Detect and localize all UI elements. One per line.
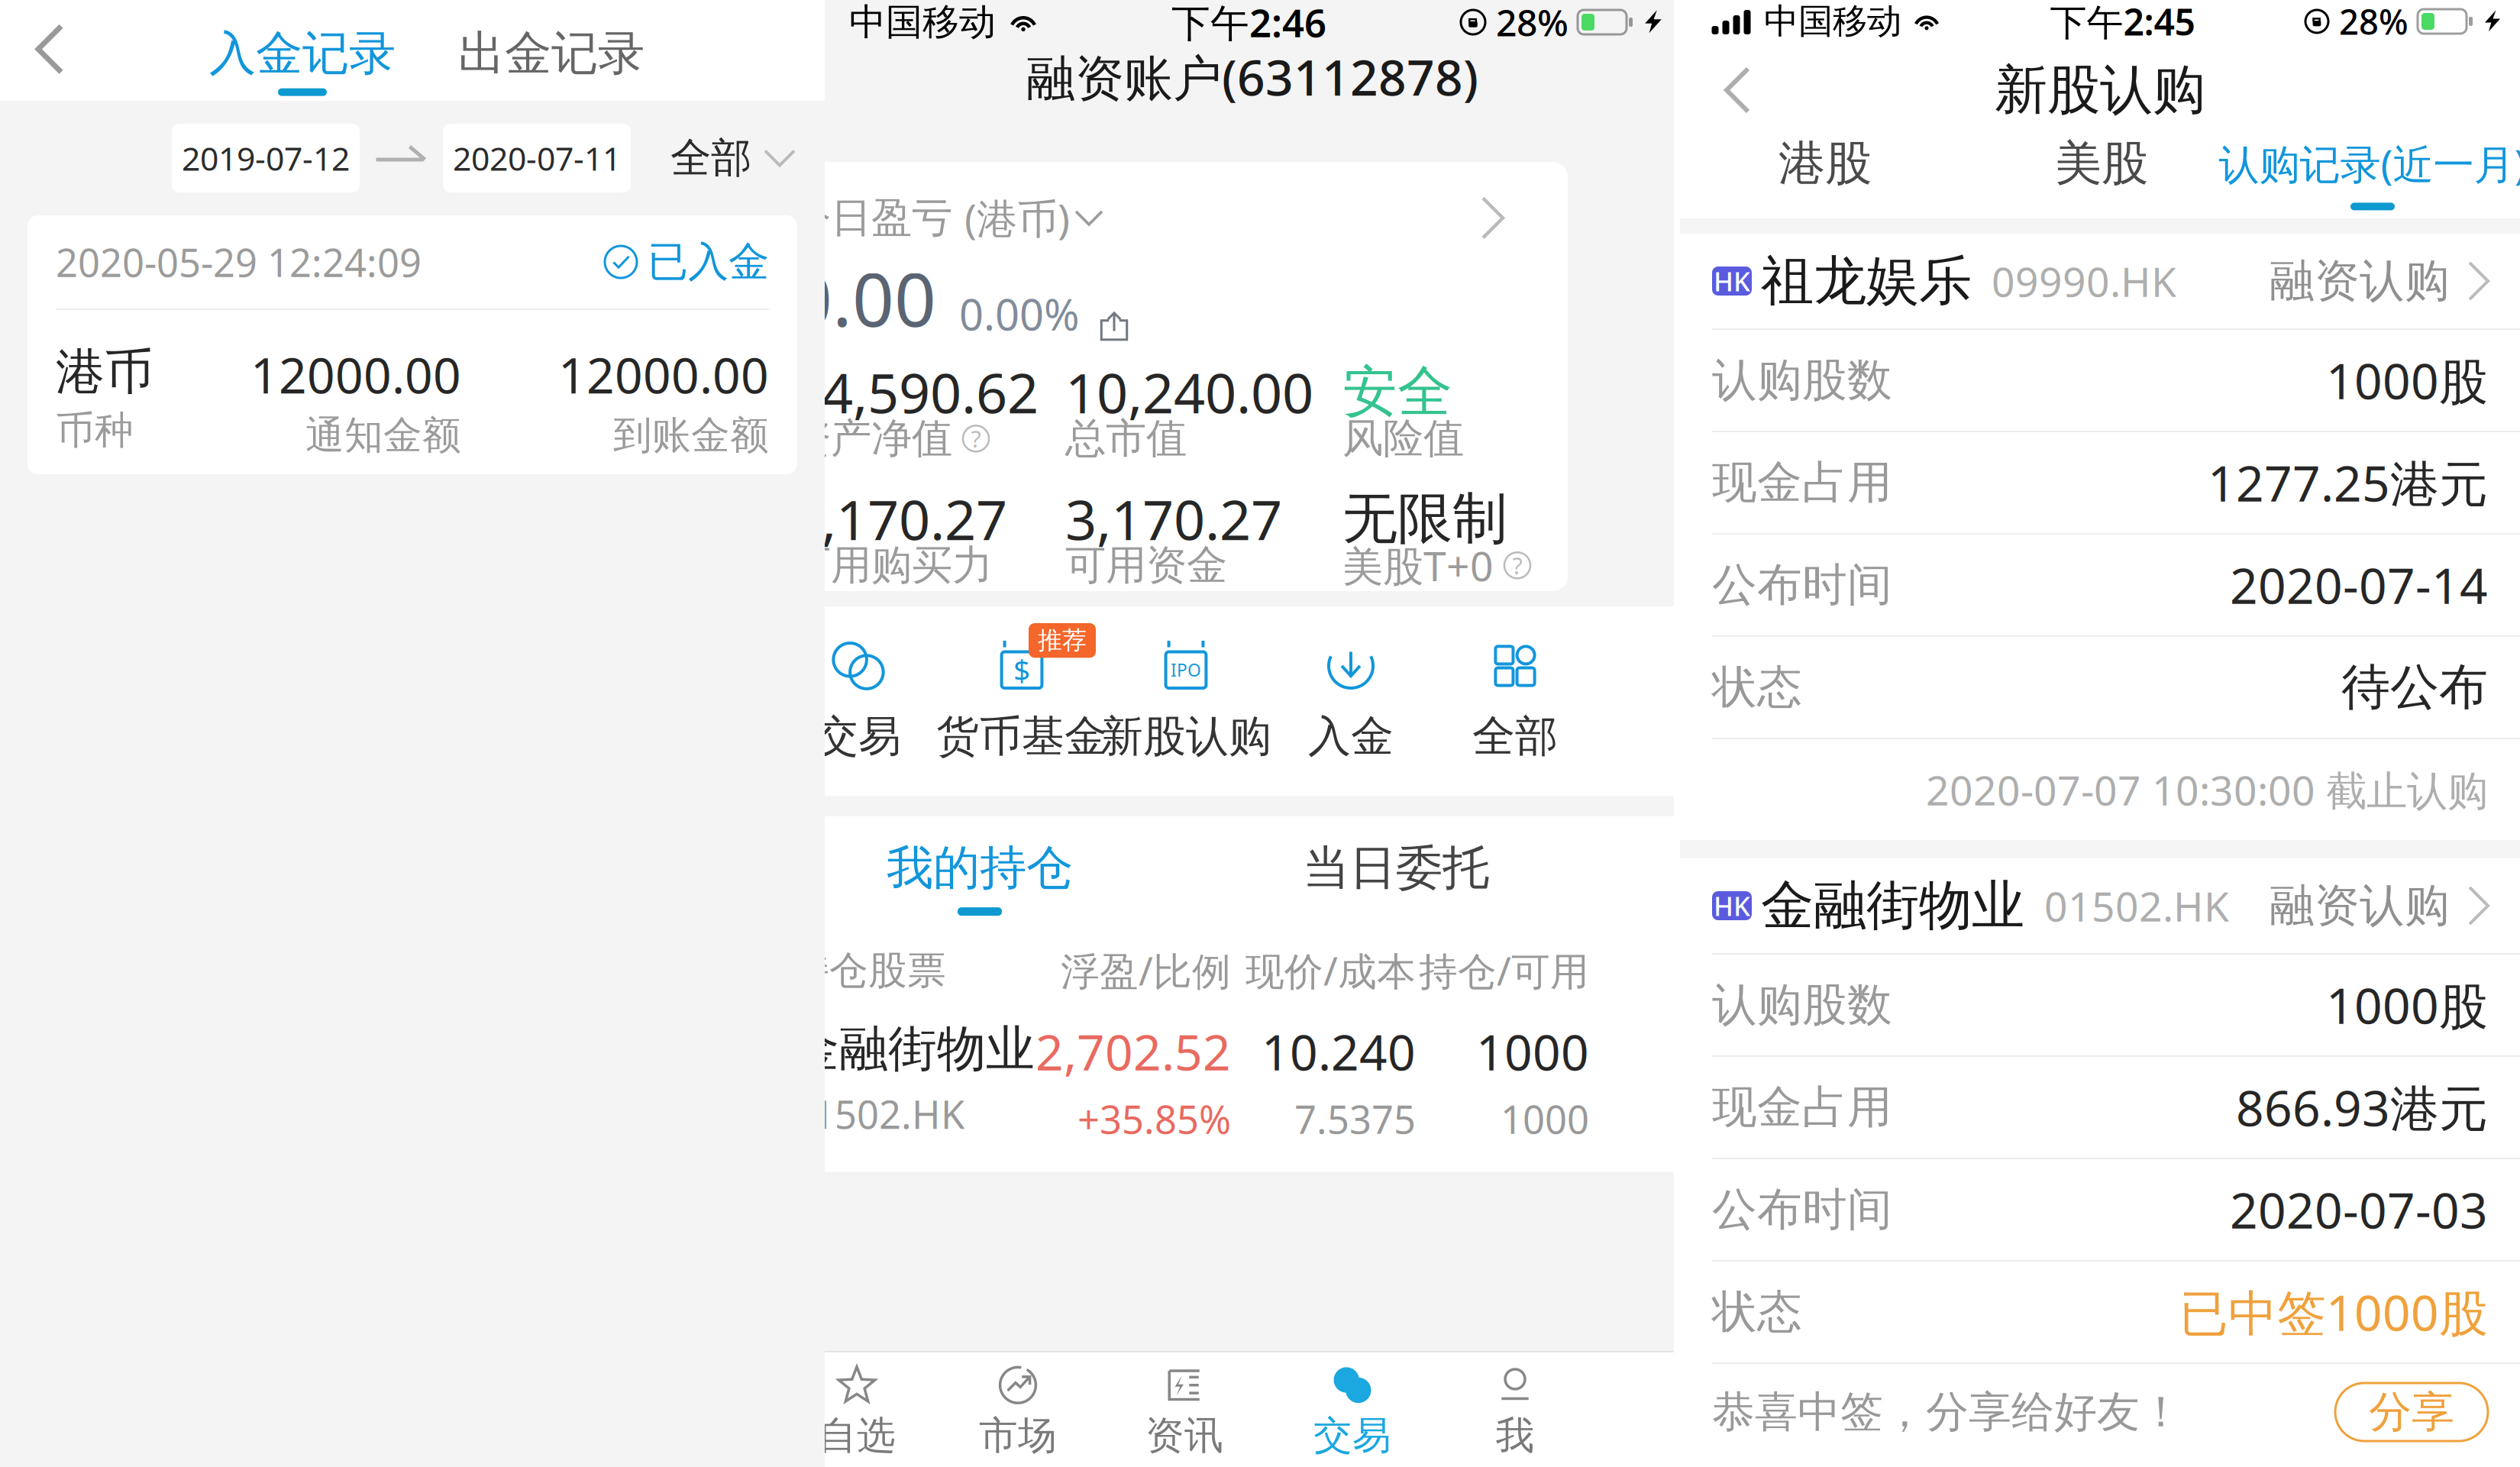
staticText: 01502.HK [2044, 879, 2229, 933]
button[interactable]: 市场 [923, 1363, 1113, 1459]
staticText: 无限制 [1342, 485, 1507, 553]
button[interactable]: 美股 [1987, 135, 2216, 221]
staticText: 已中签1000股 [2179, 1280, 2488, 1344]
staticText: 01502.HK [790, 1088, 964, 1140]
staticText: 公布时间 [1712, 557, 1892, 613]
button[interactable]: 认购记录(近一月) [2222, 136, 2520, 219]
button[interactable]: $ [926, 634, 1117, 763]
staticText: 0.00 [790, 250, 936, 347]
staticText: $ [1013, 650, 1030, 690]
button[interactable]: 交易 [1256, 1363, 1449, 1459]
staticText: 现价/成本 [1245, 945, 1416, 996]
button[interactable]: Back [0, 0, 99, 100]
staticText: 2019-07-12 [182, 136, 350, 180]
button[interactable]: 资讯 [1113, 1363, 1256, 1459]
staticText: 0.00% [959, 286, 1080, 342]
button[interactable]: 我 [1449, 1363, 1581, 1459]
button[interactable]: 入金 [1255, 634, 1447, 763]
staticText: (港币) [964, 191, 1070, 245]
staticText: 待公布 [2341, 657, 2488, 717]
staticText: 认购股数 [1712, 977, 1892, 1033]
staticText: HK [1714, 263, 1750, 299]
staticText: 可用资金 [1065, 540, 1227, 590]
staticText: 公布时间 [1712, 1182, 1892, 1237]
button[interactable]: 入金记录 [215, 25, 389, 96]
staticText: 现金占用 [1712, 455, 1892, 510]
staticText: 已入金 [648, 237, 769, 287]
staticText: 2020-07-14 [2230, 553, 2488, 617]
staticText: 下午2:45 [2050, 0, 2195, 46]
staticText: 下午2:46 [1171, 0, 1326, 48]
staticText: 币种 [56, 407, 134, 454]
button[interactable]: IPO [1117, 634, 1255, 763]
staticText: 美股 [2055, 135, 2148, 192]
staticText: 2,702.52 [1035, 1019, 1231, 1084]
staticText: 1000 [1501, 1093, 1589, 1145]
staticText: 1000 [1476, 1019, 1589, 1084]
staticText: 总市值 [1065, 414, 1187, 464]
button[interactable]: HK [1680, 858, 2520, 953]
staticText: 全部 [670, 133, 751, 183]
staticText: 分享 [2369, 1386, 2454, 1438]
button[interactable]: 自选 [790, 1363, 923, 1459]
staticText: 当日委托 [1303, 839, 1489, 897]
button[interactable]: HK [1680, 234, 2520, 328]
staticText: 港币 [56, 342, 153, 402]
staticText: 28% [2339, 0, 2409, 44]
staticText: 2020-07-07 10:30:00 截止认购 [1926, 763, 2488, 817]
staticText: 市场 [979, 1412, 1057, 1459]
staticText: +35.85% [1077, 1093, 1231, 1145]
button[interactable]: 港股 [1711, 135, 1940, 221]
staticText: 中国移动 [1764, 0, 1901, 43]
staticText: 交易 [1313, 1412, 1391, 1459]
button[interactable]: 当日委托 [1266, 839, 1526, 916]
staticText: 7.5375 [1294, 1093, 1416, 1145]
staticText: 2020-05-29 12:24:09 [56, 236, 422, 288]
staticText: ? [971, 423, 981, 454]
staticText: 金融街物业 [1761, 873, 2024, 938]
staticText: 全部 [1472, 710, 1558, 763]
staticText: 融资认购 [2270, 878, 2450, 933]
button[interactable]: 全部 [670, 133, 825, 183]
staticText: 状态 [1712, 660, 1802, 715]
staticText: 3,170.27 [790, 482, 1007, 555]
staticText: 金融街物业 [790, 1019, 1035, 1079]
staticText: 融资账户(63112878) [1026, 44, 1478, 109]
staticText: 状态 [1712, 1284, 1802, 1340]
staticText: ? [1512, 550, 1522, 581]
staticText: 出金记录 [458, 25, 645, 82]
staticText: 今日盈亏 [790, 193, 952, 243]
button[interactable]: 我的持仓 [850, 839, 1110, 916]
staticText: IPO [1171, 658, 1201, 681]
staticText: 资讯 [1145, 1412, 1223, 1459]
staticText: 入金 [1308, 710, 1394, 763]
staticText: 1000股 [2326, 973, 2488, 1037]
staticText: 12000.00 [250, 342, 461, 407]
staticText: 28% [1496, 0, 1569, 46]
staticText: 新股认购 [1100, 710, 1271, 763]
staticText: 到账金额 [613, 412, 769, 459]
staticText: 09990.HK [1992, 254, 2176, 308]
staticText: 10,240.00 [1065, 355, 1313, 428]
staticText: 自选 [818, 1412, 896, 1459]
button[interactable]: 交易 [790, 634, 926, 763]
staticText: 风险值 [1342, 414, 1464, 464]
staticText: 12000.00 [558, 342, 769, 407]
button[interactable]: 全部 [1447, 634, 1583, 763]
staticText: 货币基金 [936, 710, 1107, 763]
staticText: 资产净值 [790, 414, 952, 464]
staticText: 新股认购 [1995, 58, 2205, 123]
button[interactable]: 分享 [2335, 1383, 2488, 1441]
staticText: 我 [1496, 1412, 1535, 1459]
button[interactable]: Back [1680, 43, 1795, 137]
staticText: 恭喜中签，分享给好友！ [1712, 1386, 2182, 1438]
staticText: 入金记录 [209, 25, 396, 82]
staticText: 现金占用 [1712, 1080, 1892, 1135]
staticText: 美股T+0 [1342, 538, 1494, 592]
staticText: HK [1714, 888, 1750, 923]
staticText: 祖龙娱乐 [1761, 248, 1972, 314]
staticText: 10.240 [1262, 1019, 1416, 1084]
button[interactable]: 出金记录 [464, 25, 638, 96]
staticText: 1277.25港元 [2208, 450, 2488, 515]
staticText: 港股 [1779, 135, 1872, 192]
